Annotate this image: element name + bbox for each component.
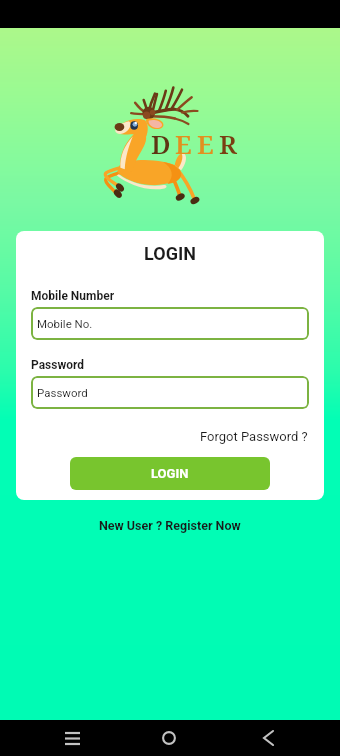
staticText: New User ? Register Now bbox=[99, 518, 241, 533]
staticText: Password bbox=[37, 386, 88, 399]
button[interactable]: Back bbox=[248, 720, 288, 756]
staticText: E bbox=[197, 126, 219, 161]
button[interactable]: Home bbox=[149, 720, 189, 756]
staticText: Mobile Number bbox=[31, 289, 115, 303]
button[interactable]: Recent apps bbox=[52, 720, 92, 756]
staticText: Mobile No. bbox=[37, 317, 93, 330]
button[interactable]: Password bbox=[31, 376, 309, 409]
button[interactable]: New User ? Register Now bbox=[99, 518, 241, 533]
button[interactable]: Mobile No. bbox=[31, 307, 309, 340]
staticText: R bbox=[219, 126, 242, 161]
staticText: LOGIN bbox=[16, 243, 324, 264]
button[interactable]: LOGIN bbox=[70, 457, 270, 490]
staticText: Password bbox=[31, 358, 85, 372]
staticText: E bbox=[175, 126, 197, 161]
staticText: LOGIN bbox=[151, 466, 189, 481]
staticText: D bbox=[151, 126, 175, 161]
button[interactable]: Forgot Password ? bbox=[200, 429, 308, 444]
staticText: Forgot Password ? bbox=[200, 429, 308, 444]
